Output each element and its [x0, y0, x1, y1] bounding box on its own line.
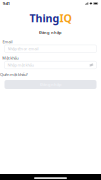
staticText: Nhập tên or email [7, 46, 38, 51]
staticText: Mật khẩu [2, 55, 18, 61]
staticText: Email [3, 39, 13, 44]
staticText: Thing [29, 11, 59, 25]
staticText: Đăng nhập [40, 82, 61, 87]
staticText: Đăng nhập [39, 30, 62, 35]
staticText: IQ [59, 11, 71, 25]
staticText: 9:41 [3, 1, 10, 6]
button[interactable]: Quên mật khẩu? [0, 72, 28, 77]
staticText: Quên mật khẩu? [0, 72, 28, 77]
staticText: Nhập mật khẩu [7, 62, 33, 68]
